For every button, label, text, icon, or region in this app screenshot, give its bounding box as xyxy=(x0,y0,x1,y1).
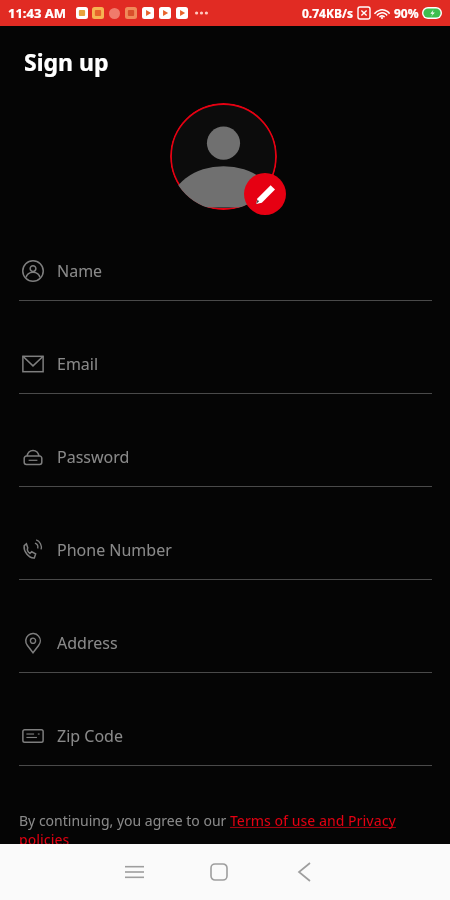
staticText: 90% xyxy=(394,5,419,21)
button[interactable]: Phone Number xyxy=(0,520,450,580)
button[interactable]: By continuing, you agree to our Terms of… xyxy=(19,811,431,849)
button[interactable]: Password xyxy=(0,427,450,487)
button[interactable]: Name xyxy=(0,241,450,301)
button[interactable]: Email xyxy=(0,334,450,394)
staticText: Phone Number xyxy=(57,539,172,561)
button[interactable]: Recent apps xyxy=(110,848,158,896)
staticText: By continuing, you agree to our Terms of… xyxy=(19,811,431,849)
button[interactable]: Home xyxy=(195,848,243,896)
button[interactable]: Zip Code xyxy=(0,706,450,766)
staticText: Password xyxy=(57,446,130,468)
staticText: Address xyxy=(57,632,118,654)
button[interactable]: Profile photo xyxy=(170,103,277,210)
button[interactable]: Address xyxy=(0,613,450,673)
staticText: Name xyxy=(57,260,103,282)
staticText: 0.74KB/s xyxy=(302,5,353,21)
button[interactable]: Back xyxy=(280,848,328,896)
staticText: Zip Code xyxy=(57,725,123,747)
staticText: Email xyxy=(57,353,99,375)
button[interactable]: Edit profile photo xyxy=(244,173,286,215)
staticText: 11:43 AM xyxy=(8,4,67,22)
staticText: Sign up xyxy=(24,46,109,77)
